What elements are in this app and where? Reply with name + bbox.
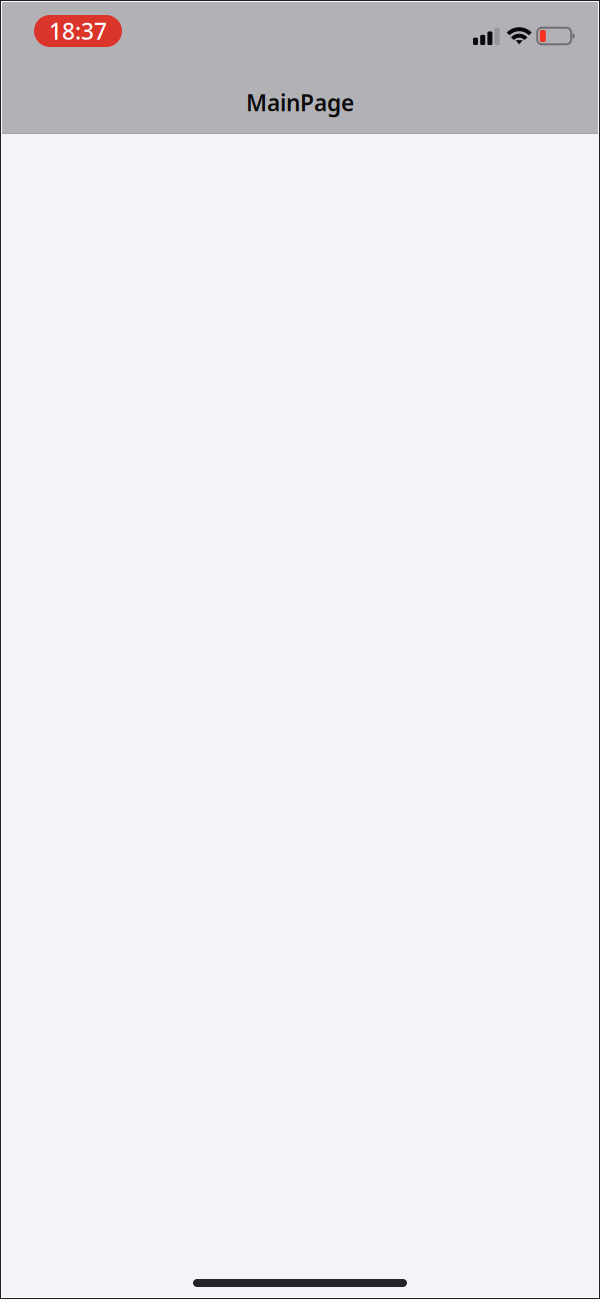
button[interactable]: 18:37: [34, 15, 122, 47]
staticText: MainPage: [246, 87, 354, 117]
staticText: 18:37: [49, 16, 107, 46]
